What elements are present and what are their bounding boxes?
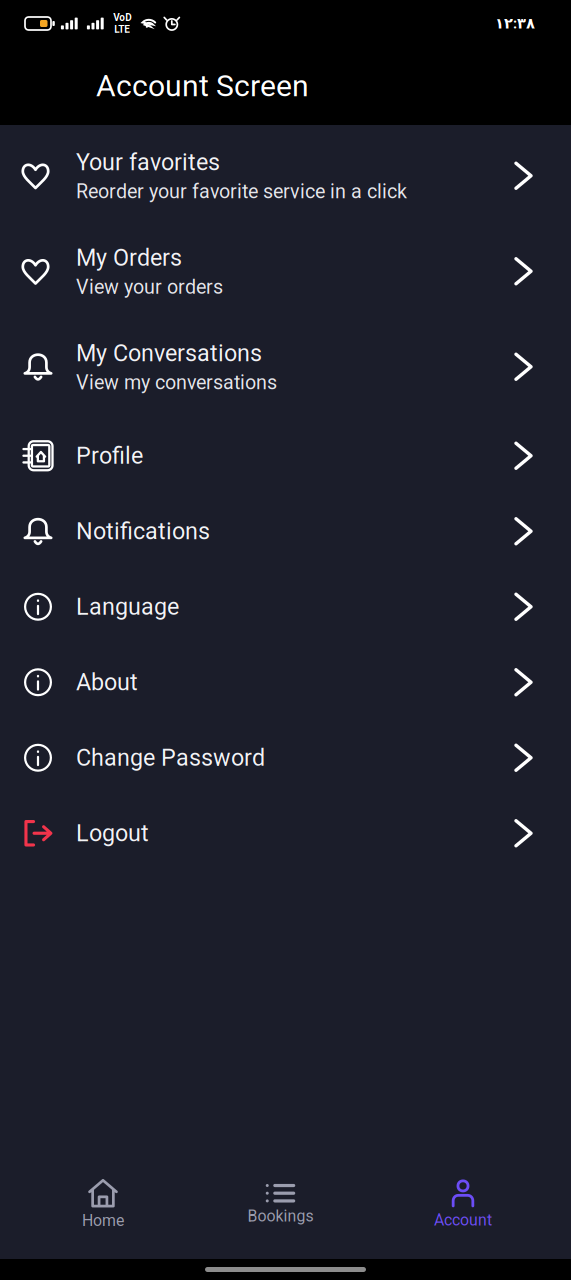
- button[interactable]: My Conversations: [0, 319, 571, 414]
- button[interactable]: Your favorites: [0, 128, 571, 223]
- button[interactable]: My Orders: [0, 223, 571, 319]
- staticText: VoD: [113, 12, 131, 23]
- staticText: Logout: [76, 820, 149, 847]
- staticText: Reorder your favorite service in a click: [76, 180, 407, 203]
- staticText: About: [76, 669, 138, 696]
- staticText: Notifications: [76, 518, 210, 545]
- staticText: Account Screen: [96, 68, 309, 104]
- staticText: Account: [434, 1211, 492, 1229]
- staticText: View your orders: [76, 275, 223, 298]
- button[interactable]: Account: [355, 1181, 571, 1228]
- button[interactable]: Change Password: [0, 720, 571, 795]
- staticText: Profile: [76, 442, 143, 469]
- button[interactable]: About: [0, 644, 571, 720]
- staticText: My Conversations: [76, 339, 262, 367]
- staticText: View my conversations: [76, 371, 277, 394]
- staticText: Bookings: [247, 1207, 313, 1225]
- button[interactable]: Language: [0, 569, 571, 644]
- button[interactable]: Profile: [0, 418, 571, 493]
- staticText: Change Password: [76, 744, 265, 771]
- staticText: Your favorites: [76, 148, 220, 176]
- staticText: My Orders: [76, 244, 182, 271]
- staticText: LTE: [114, 23, 130, 35]
- button[interactable]: Logout: [0, 795, 571, 871]
- button[interactable]: Home: [0, 1181, 206, 1228]
- staticText: Language: [76, 593, 179, 620]
- staticText: ١٢:٣٨: [495, 15, 535, 32]
- button[interactable]: Notifications: [0, 493, 571, 569]
- button[interactable]: Bookings: [206, 1181, 355, 1228]
- staticText: Home: [82, 1211, 124, 1230]
